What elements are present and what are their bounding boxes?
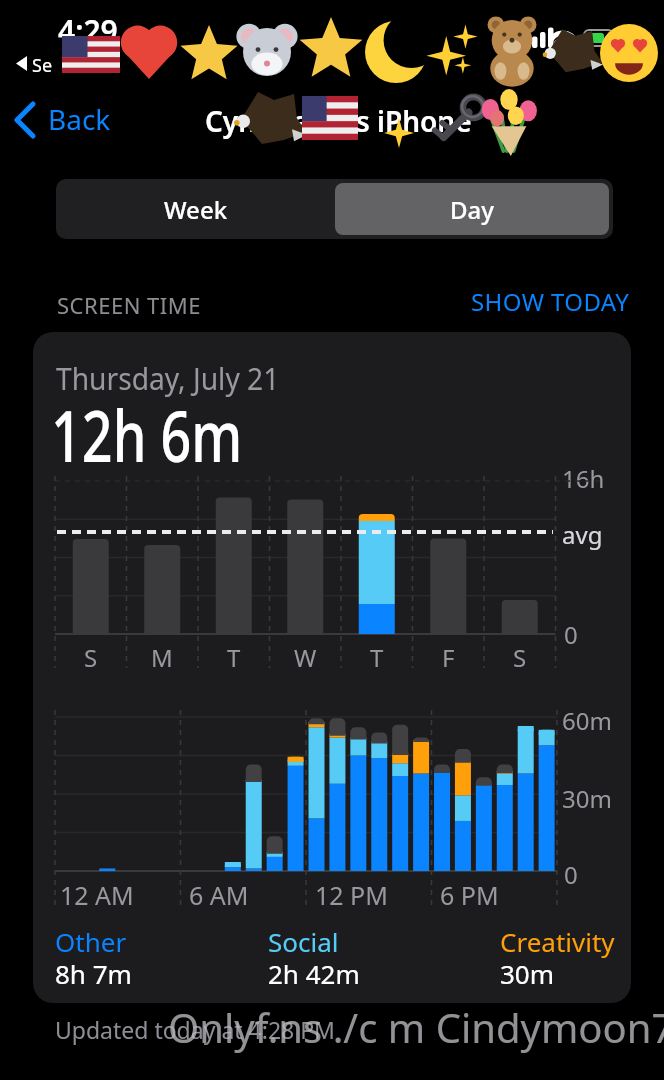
staticText: F (442, 641, 455, 669)
staticText: 0 (564, 858, 578, 891)
staticText: Thursday, July 21 (56, 358, 280, 399)
staticText: Back (48, 100, 111, 138)
staticText: Other (55, 924, 127, 959)
staticText: 30m (500, 956, 555, 991)
staticText: Se (32, 53, 53, 78)
staticText: S (513, 641, 527, 669)
staticText: 0 (564, 618, 578, 651)
staticText: S (84, 641, 98, 669)
staticText: SCREEN TIME (57, 290, 201, 320)
staticText: Week (164, 193, 228, 226)
button[interactable]: Week (56, 179, 335, 239)
staticText: T (227, 641, 241, 669)
staticText: 12 PM (315, 878, 388, 912)
staticText: W (294, 641, 317, 669)
staticText: M (151, 641, 173, 669)
staticText: 12 AM (60, 878, 134, 912)
staticText: Creativity (500, 924, 615, 959)
staticText: Updated today at 4:28 PM (55, 1014, 335, 1045)
staticText: Onlyf.ns ./c m Cindymoon7 (168, 1000, 664, 1054)
staticText: 6 PM (440, 878, 499, 912)
staticText: 16h (562, 462, 605, 495)
button[interactable]: Back (10, 96, 120, 144)
staticText: 6 AM (189, 878, 249, 912)
staticText: T (370, 641, 384, 669)
staticText: s iPhone (356, 102, 472, 140)
button[interactable] (335, 183, 609, 235)
staticText: 8h 7m (55, 956, 132, 991)
staticText: 30m (562, 782, 612, 815)
staticText: 12h 6m (51, 387, 243, 482)
staticText: Social (268, 924, 339, 959)
staticText: 2h 42m (268, 956, 360, 991)
staticText: 4:29 (58, 10, 118, 51)
staticText: Cynthia (205, 102, 310, 140)
staticText: SHOW TODAY (471, 285, 630, 315)
staticText: Day (450, 193, 494, 226)
button[interactable]: SHOW TODAY (455, 285, 630, 315)
staticText: avg (562, 518, 603, 551)
staticText: 60m (562, 704, 612, 737)
